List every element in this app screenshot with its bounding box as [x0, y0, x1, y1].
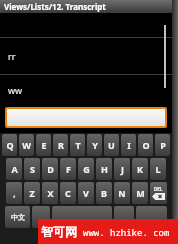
staticText: ww	[8, 84, 23, 96]
button[interactable]: Space	[52, 206, 112, 228]
staticText: Y	[92, 139, 98, 151]
staticText: N	[118, 187, 126, 199]
staticText: S	[30, 163, 35, 175]
staticText: P	[160, 139, 166, 151]
button[interactable]: B	[96, 182, 112, 204]
button[interactable]: T	[70, 134, 85, 156]
staticText: M	[136, 187, 145, 199]
button[interactable]: J	[114, 158, 130, 180]
button[interactable]: Delete	[150, 182, 167, 204]
staticText: Z	[29, 187, 35, 199]
staticText: 智可网	[41, 224, 77, 239]
staticText: H	[101, 163, 108, 175]
staticText: C	[65, 187, 71, 199]
button[interactable]: ,	[6, 182, 22, 204]
staticText: E	[41, 139, 47, 151]
button[interactable]: V	[78, 182, 94, 204]
staticText: Q	[6, 139, 14, 151]
staticText: O	[142, 139, 150, 151]
button[interactable]: Z	[24, 182, 40, 204]
button[interactable]: U	[104, 134, 119, 156]
button[interactable]: S	[24, 158, 40, 180]
staticText: W	[22, 139, 31, 151]
staticText: F	[66, 163, 71, 175]
staticText: 中文	[11, 213, 25, 222]
button[interactable]: ww	[0, 75, 172, 105]
staticText: X	[47, 187, 54, 199]
staticText: V	[83, 187, 89, 199]
button[interactable]	[5, 107, 167, 128]
staticText: B	[101, 187, 107, 199]
button[interactable]: N	[114, 182, 130, 204]
button[interactable]	[114, 206, 134, 228]
button[interactable]: Q	[2, 134, 17, 156]
button[interactable]	[32, 206, 50, 228]
button[interactable]: H	[96, 158, 112, 180]
button[interactable]: R	[53, 134, 68, 156]
button[interactable]: P	[155, 134, 170, 156]
button[interactable]: rr	[0, 38, 172, 74]
button[interactable]: D	[42, 158, 58, 180]
button[interactable]: I	[121, 134, 136, 156]
button[interactable]: X	[42, 182, 58, 204]
staticText: ,	[13, 188, 16, 199]
button[interactable]: A	[6, 158, 22, 180]
staticText: I	[127, 139, 131, 151]
button[interactable]: C	[60, 182, 76, 204]
button[interactable]: K	[132, 158, 148, 180]
staticText: Views/Lists/12. Transcript	[4, 1, 106, 12]
staticText: DEL	[154, 186, 163, 192]
staticText: K	[137, 163, 143, 175]
staticText: L	[155, 163, 161, 175]
button[interactable]: Y	[87, 134, 102, 156]
button[interactable]: F	[60, 158, 76, 180]
staticText: D	[47, 163, 54, 175]
staticText: R	[58, 139, 64, 151]
staticText: A	[11, 163, 18, 175]
button[interactable]: Enter	[136, 206, 167, 228]
staticText: J	[121, 163, 124, 175]
staticText: www. hzhike. com	[83, 226, 170, 238]
button[interactable]: O	[138, 134, 153, 156]
staticText: rr	[8, 50, 16, 62]
staticText: G	[83, 163, 90, 175]
button[interactable]: M	[132, 182, 148, 204]
button[interactable]: G	[78, 158, 94, 180]
button[interactable]: 中文	[5, 206, 30, 228]
button[interactable]: E	[36, 134, 51, 156]
button[interactable]: L	[150, 158, 166, 180]
button[interactable]: W	[19, 134, 34, 156]
staticText: U	[108, 139, 115, 151]
staticText: T	[75, 139, 81, 151]
